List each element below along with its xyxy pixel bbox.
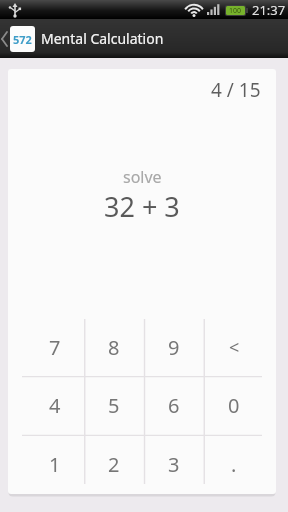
button[interactable]: 6	[144, 376, 204, 435]
staticText: 9	[168, 334, 180, 361]
staticText: <	[229, 335, 240, 360]
button[interactable]: 0	[204, 376, 264, 435]
button[interactable]: 3	[144, 435, 204, 494]
button[interactable]: 2	[84, 435, 144, 494]
staticText: 8	[108, 334, 120, 361]
button[interactable]: .	[204, 435, 264, 494]
button[interactable]: 5	[84, 376, 144, 435]
button[interactable]: 9	[144, 318, 204, 376]
button[interactable]: 1	[25, 435, 84, 494]
staticText: 1	[49, 451, 61, 478]
staticText: 572	[13, 32, 32, 47]
staticText: 2	[108, 451, 120, 478]
staticText: .	[231, 451, 237, 478]
button[interactable]: 8	[84, 318, 144, 376]
staticText: 21:37	[252, 1, 286, 19]
staticText: 4 / 15	[211, 77, 261, 103]
staticText: 32 + 3	[104, 188, 180, 225]
staticText: 0	[228, 392, 240, 419]
button[interactable]: <	[204, 318, 264, 376]
staticText: 100	[229, 6, 242, 16]
staticText: 5	[108, 392, 120, 419]
staticText: 7	[49, 334, 61, 361]
staticText: Mental Calculation	[41, 29, 164, 48]
staticText: 3	[168, 451, 180, 478]
button[interactable]: 7	[25, 318, 84, 376]
staticText: 6	[168, 392, 180, 419]
staticText: solve	[123, 166, 162, 188]
staticText: 4	[49, 392, 61, 419]
button[interactable]: 572	[0, 19, 288, 58]
button[interactable]: 4	[25, 376, 84, 435]
